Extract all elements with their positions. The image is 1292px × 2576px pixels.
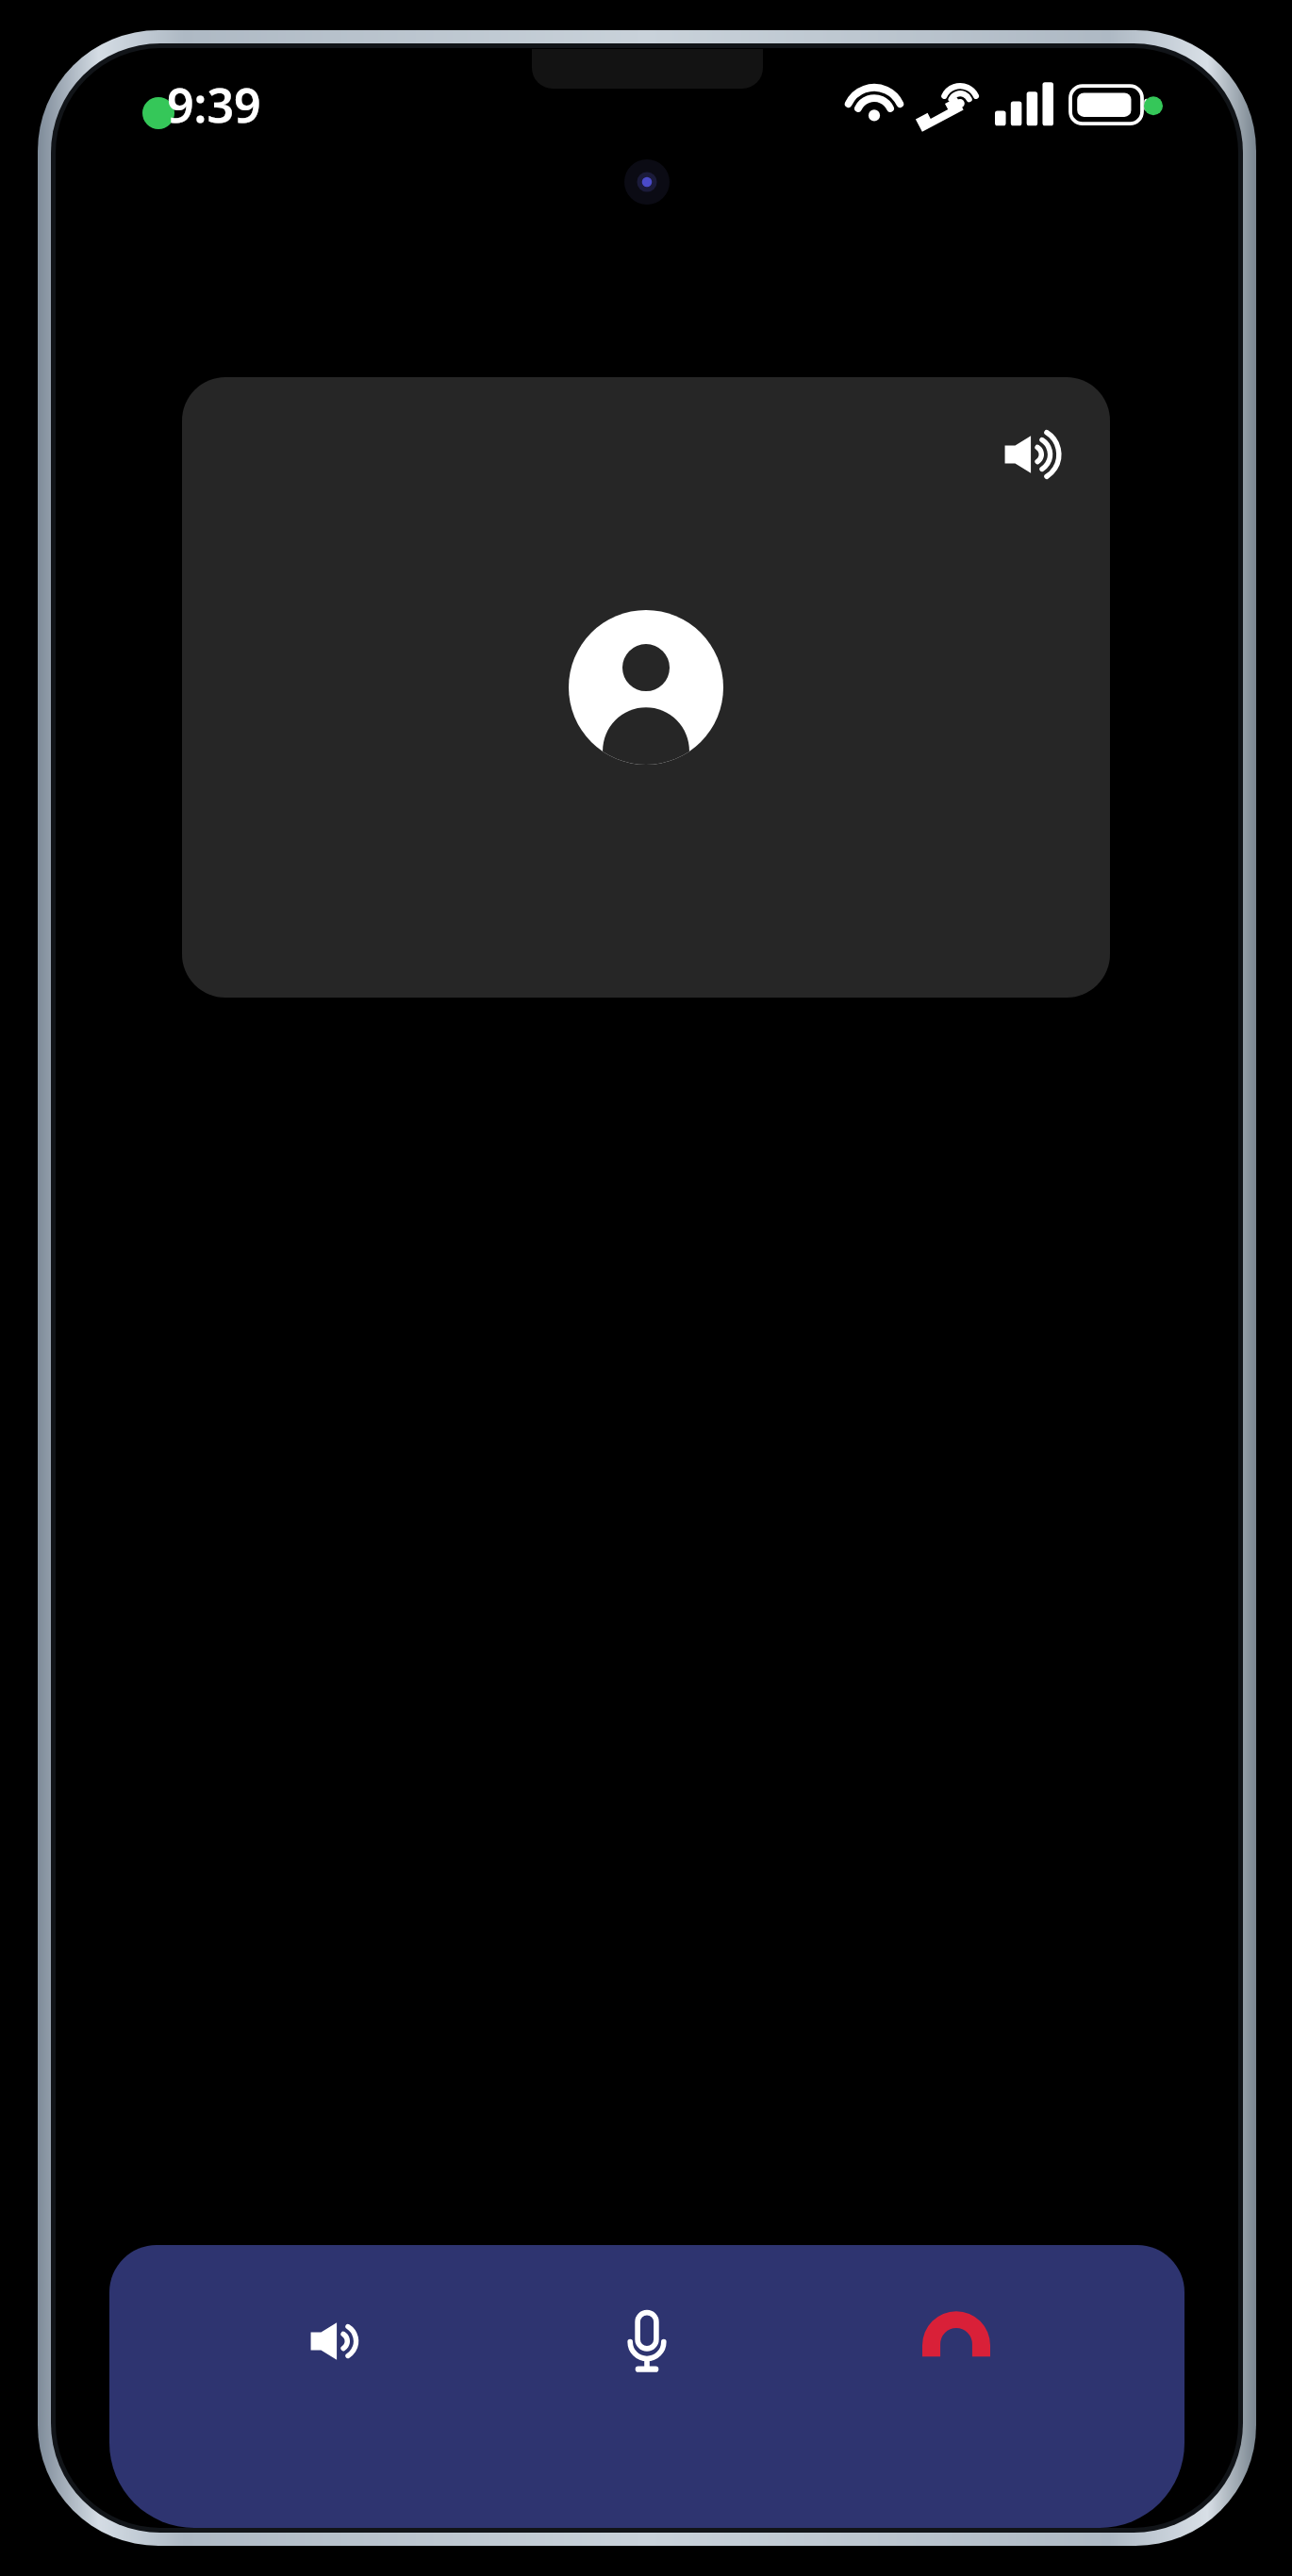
button[interactable]: Speaker on — [999, 421, 1067, 488]
staticText: 9:39 — [167, 73, 261, 137]
button[interactable]: End call — [876, 2271, 1036, 2412]
button[interactable]: Speaker on — [182, 377, 1110, 998]
button[interactable]: Mute microphone — [567, 2271, 727, 2412]
button[interactable]: Speaker — [258, 2271, 419, 2412]
